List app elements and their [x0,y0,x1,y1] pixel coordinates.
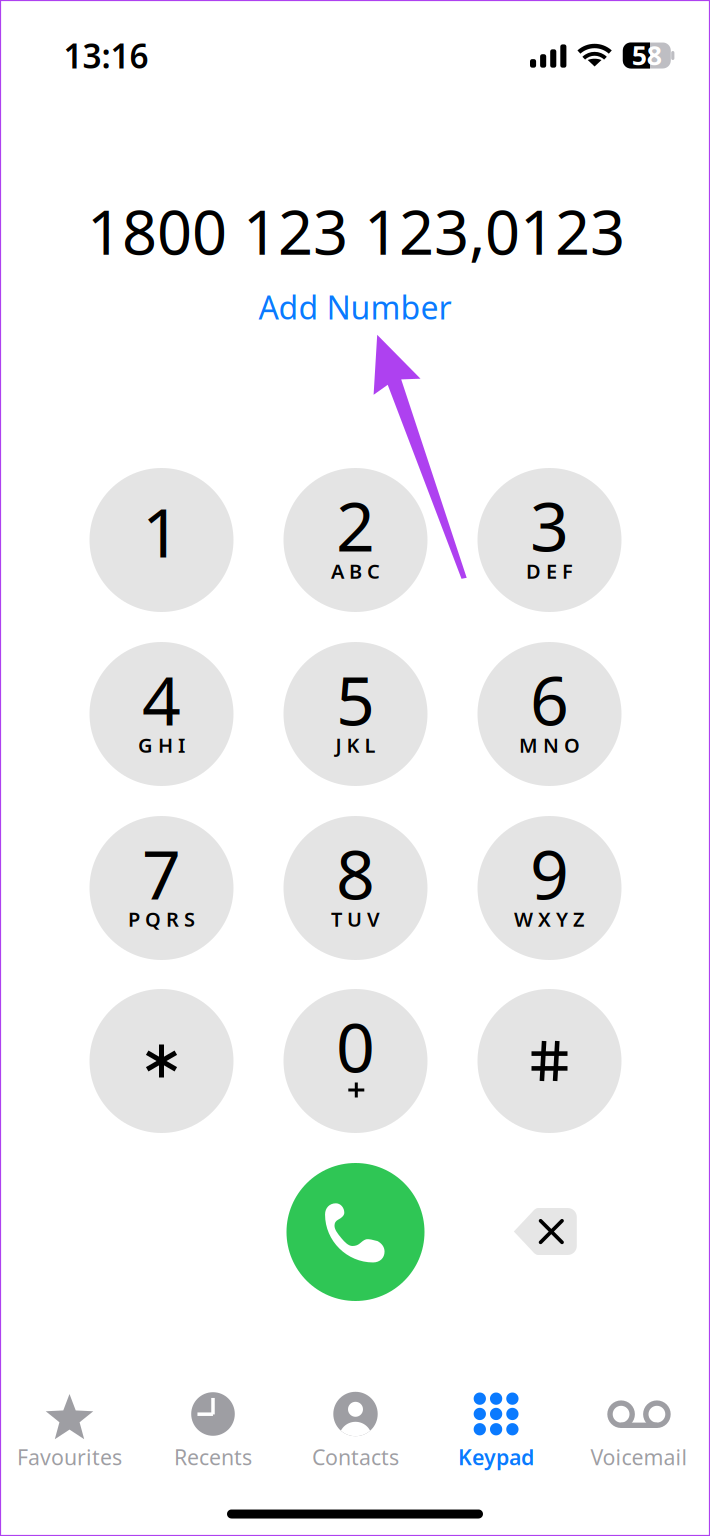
button[interactable]: 2 [283,468,427,612]
button[interactable]: 4 [89,642,233,786]
button[interactable]: Delete [497,1188,593,1274]
button[interactable]: Voicemail [568,1370,710,1466]
staticText: 5 [336,654,375,744]
staticText: D E F [526,558,573,584]
button[interactable]: 7 [89,816,233,960]
staticText: Favourites [17,1443,122,1471]
staticText: 0 [336,1001,375,1091]
staticText: 9 [530,828,569,918]
button[interactable]: * [89,989,233,1133]
button[interactable]: Contacts [284,1370,426,1466]
staticText: 6 [530,654,569,744]
staticText: Voicemail [590,1443,687,1471]
button[interactable]: 1 [89,468,233,612]
staticText: 4 [142,654,181,744]
staticText: 13:16 [63,33,148,78]
staticText: 3 [530,480,569,570]
button[interactable]: 6 [477,642,621,786]
button[interactable]: 9 [477,816,621,960]
button[interactable]: 0 [283,989,427,1133]
button[interactable]: Recents [142,1370,284,1466]
button[interactable]: # [477,989,621,1133]
staticText: Keypad [458,1443,534,1471]
staticText: 8 [336,828,375,918]
staticText: 1800 123 123,0123 [87,190,625,272]
staticText: J K L [335,732,375,758]
button[interactable]: Add Number [205,281,505,333]
staticText: M N O [519,732,580,758]
staticText: 2 [336,480,375,570]
staticText: W X Y Z [514,906,585,932]
button[interactable]: 3 [477,468,621,612]
staticText: G H I [138,732,185,758]
staticText: P Q R S [128,906,195,932]
staticText: 1 [142,486,181,576]
button[interactable]: 5 [283,642,427,786]
staticText: A B C [331,558,380,584]
staticText: T U V [331,906,380,932]
staticText: Add Number [258,286,451,328]
staticText: Contacts [312,1443,399,1471]
button[interactable]: 8 [283,816,427,960]
staticText: 58 [632,37,662,73]
staticText: 7 [142,828,181,918]
staticText: Recents [174,1443,252,1471]
button[interactable]: Favourites [0,1370,140,1466]
button[interactable]: Keypad [425,1370,567,1466]
button[interactable]: Call [286,1163,424,1301]
